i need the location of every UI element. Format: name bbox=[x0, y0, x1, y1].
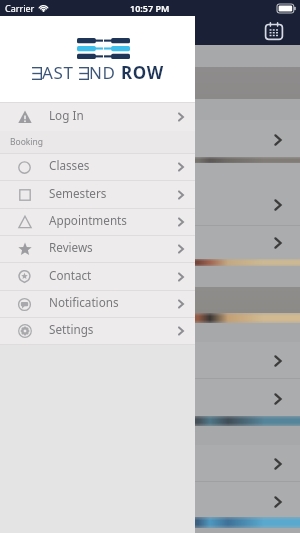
button[interactable]: List item bbox=[0, 482, 300, 521]
staticText: Settings bbox=[49, 321, 94, 337]
button[interactable]: Appointments bbox=[0, 209, 195, 235]
staticText: Contact bbox=[49, 267, 92, 283]
staticText: Reviews bbox=[49, 239, 93, 255]
button[interactable]: List item bbox=[0, 120, 300, 160]
button[interactable]: List item bbox=[0, 163, 300, 246]
button[interactable]: List item bbox=[0, 226, 300, 259]
staticText: Notifications bbox=[49, 294, 119, 310]
button[interactable]: List item bbox=[0, 342, 300, 379]
button[interactable]: Calendar bbox=[261, 18, 287, 44]
button[interactable]: List item bbox=[0, 445, 300, 482]
staticText: Semesters bbox=[49, 185, 107, 201]
staticText: Booking bbox=[10, 136, 44, 148]
staticText: AST bbox=[42, 61, 79, 84]
staticText: Carrier bbox=[5, 2, 35, 14]
button[interactable]: Classes bbox=[0, 154, 195, 180]
button[interactable]: Contact bbox=[0, 263, 195, 290]
button[interactable]: Settings bbox=[0, 318, 195, 344]
staticText: Classes bbox=[49, 157, 90, 173]
button[interactable]: Reviews bbox=[0, 236, 195, 262]
staticText: ND bbox=[89, 61, 116, 84]
button[interactable]: Notifications bbox=[0, 291, 195, 317]
staticText: 10:57 PM bbox=[130, 2, 170, 14]
staticText: Log In bbox=[49, 107, 84, 123]
button[interactable]: Log In bbox=[0, 103, 195, 131]
button[interactable]: List item bbox=[0, 379, 300, 418]
button[interactable]: Semesters bbox=[0, 181, 195, 208]
staticText: Appointments bbox=[49, 212, 127, 228]
staticText: ROW bbox=[121, 61, 164, 84]
